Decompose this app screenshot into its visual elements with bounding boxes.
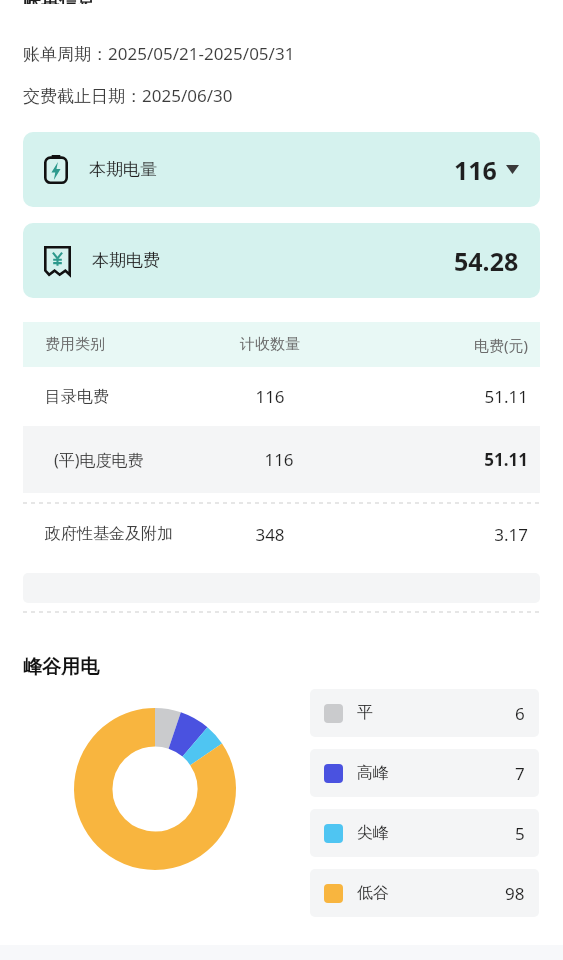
staticText: (平)电度电费 [54, 449, 224, 471]
staticText: 116 [224, 448, 334, 471]
button[interactable]: 低谷 [310, 869, 539, 917]
staticText: 计收数量 [215, 335, 325, 354]
staticText: 费用类别 [45, 335, 215, 354]
staticText: 尖峰 [357, 823, 389, 843]
staticText: 低谷 [357, 883, 389, 903]
staticText: 本期电量 [89, 159, 157, 180]
staticText: 51.11 [325, 385, 528, 408]
button[interactable]: 高峰 [310, 749, 539, 797]
button[interactable]: 尖峰 [310, 809, 539, 857]
staticText: 交费截止日期：2025/06/30 [23, 84, 233, 107]
staticText: 116 [454, 153, 497, 187]
button[interactable]: 账单信息 [23, 0, 95, 4]
staticText: 账单周期：2025/05/21-2025/05/31 [23, 42, 295, 65]
staticText: 3.17 [325, 523, 528, 546]
button[interactable]: 本期电量 [23, 132, 540, 207]
button[interactable]: 平 [310, 689, 539, 737]
staticText: 高峰 [357, 763, 389, 783]
staticText: 政府性基金及附加 [45, 524, 215, 544]
staticText: 目录电费 [45, 387, 215, 407]
staticText: 348 [215, 523, 325, 546]
staticText: 98 [505, 882, 525, 905]
staticText: 116 [215, 385, 325, 408]
staticText: 54.28 [454, 244, 519, 278]
staticText: 6 [515, 702, 525, 725]
button[interactable]: 本期电费 [23, 223, 540, 298]
staticText: 本期电费 [92, 250, 160, 271]
staticText: 7 [515, 762, 525, 785]
staticText: 峰谷用电 [23, 655, 99, 679]
staticText: 5 [515, 822, 525, 845]
staticText: 账单信息 [23, 0, 95, 4]
staticText: 平 [357, 703, 373, 723]
staticText: 电费(元) [325, 335, 528, 355]
staticText: 51.11 [334, 448, 528, 471]
